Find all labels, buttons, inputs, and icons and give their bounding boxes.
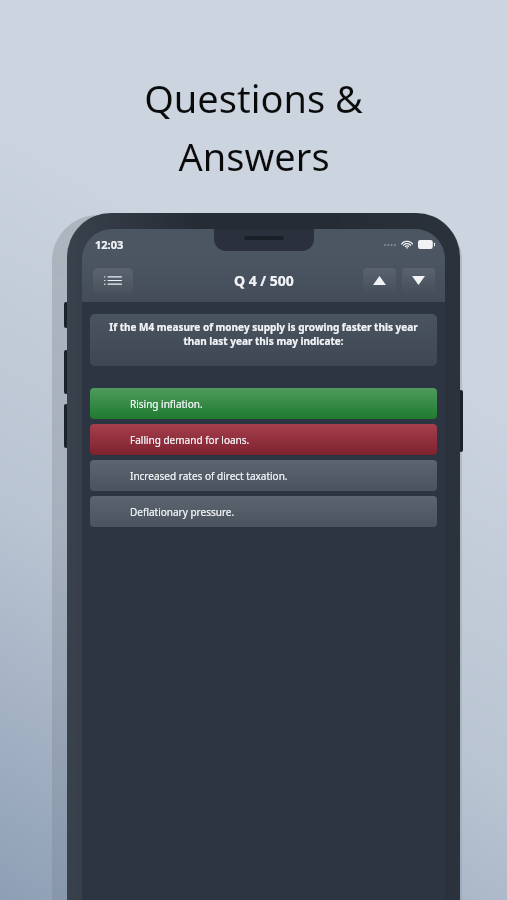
button[interactable]: Next question xyxy=(402,268,435,293)
button[interactable]: Deflationary pressure. xyxy=(90,496,437,527)
staticText: 12:03 xyxy=(95,237,124,252)
staticText: Increased rates of direct taxation. xyxy=(130,469,288,483)
staticText: Deflationary pressure. xyxy=(130,505,235,519)
button[interactable]: Increased rates of direct taxation. xyxy=(90,460,437,491)
staticText: Falling demand for loans. xyxy=(130,433,250,447)
button[interactable]: Rising inflation. xyxy=(90,388,437,419)
button[interactable]: Falling demand for loans. xyxy=(90,424,437,455)
button[interactable]: Question list xyxy=(93,268,133,293)
staticText: Answers xyxy=(178,130,330,182)
staticText: If the M4 measure of money supply is gro… xyxy=(98,320,429,348)
staticText: Q 4 / 500 xyxy=(234,271,294,290)
button[interactable]: Previous question xyxy=(363,268,396,293)
staticText: Questions & xyxy=(144,72,363,124)
staticText: Rising inflation. xyxy=(130,397,203,411)
